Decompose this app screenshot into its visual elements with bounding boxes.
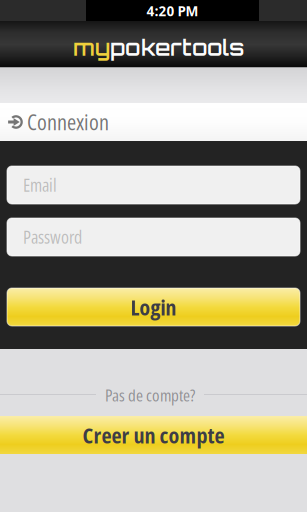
button[interactable]: Login: [7, 288, 300, 326]
staticText: my: [73, 33, 110, 61]
button[interactable]: Connexion: [0, 103, 307, 141]
staticText: Email: [23, 173, 57, 197]
button[interactable]: Password: [7, 218, 300, 256]
staticText: Creer un compte: [82, 420, 224, 450]
staticText: Password: [23, 225, 82, 249]
staticText: Connexion: [27, 107, 109, 137]
staticText: Pas de compte?: [105, 384, 195, 406]
button[interactable]: Email: [7, 166, 300, 204]
staticText: pokertools: [110, 33, 244, 61]
staticText: Login: [130, 292, 176, 322]
button[interactable]: Creer un compte: [0, 416, 307, 454]
staticText: 4:20 PM: [146, 0, 198, 20]
